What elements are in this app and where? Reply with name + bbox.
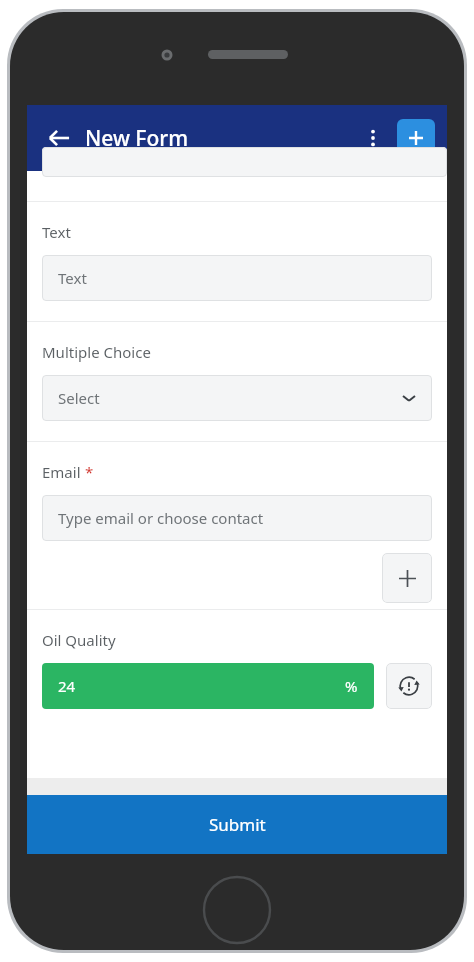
button[interactable]: Back: [39, 118, 79, 158]
staticText: Text: [42, 222, 71, 242]
button[interactable]: Refresh reading: [386, 663, 432, 709]
staticText: Multiple Choice: [42, 342, 151, 362]
staticText: Submit: [209, 813, 266, 836]
staticText: 24: [58, 676, 76, 696]
button[interactable]: More options: [353, 118, 393, 158]
staticText: Email: [42, 462, 81, 482]
staticText: Text: [58, 268, 87, 288]
staticText: New Form: [85, 124, 189, 153]
staticText: Type email or choose contact: [58, 508, 264, 528]
button[interactable]: Add: [397, 119, 435, 157]
staticText: Select: [58, 388, 100, 408]
staticText: %: [345, 676, 358, 696]
staticText: Oil Quality: [42, 630, 116, 650]
button[interactable]: Add email: [382, 553, 432, 603]
button[interactable]: Submit: [27, 795, 447, 854]
button[interactable]: Type email or choose contact: [42, 495, 432, 541]
button[interactable]: Text: [42, 255, 432, 301]
staticText: *: [85, 462, 94, 482]
button[interactable]: 24: [42, 663, 374, 709]
button[interactable]: Select: [42, 375, 432, 421]
